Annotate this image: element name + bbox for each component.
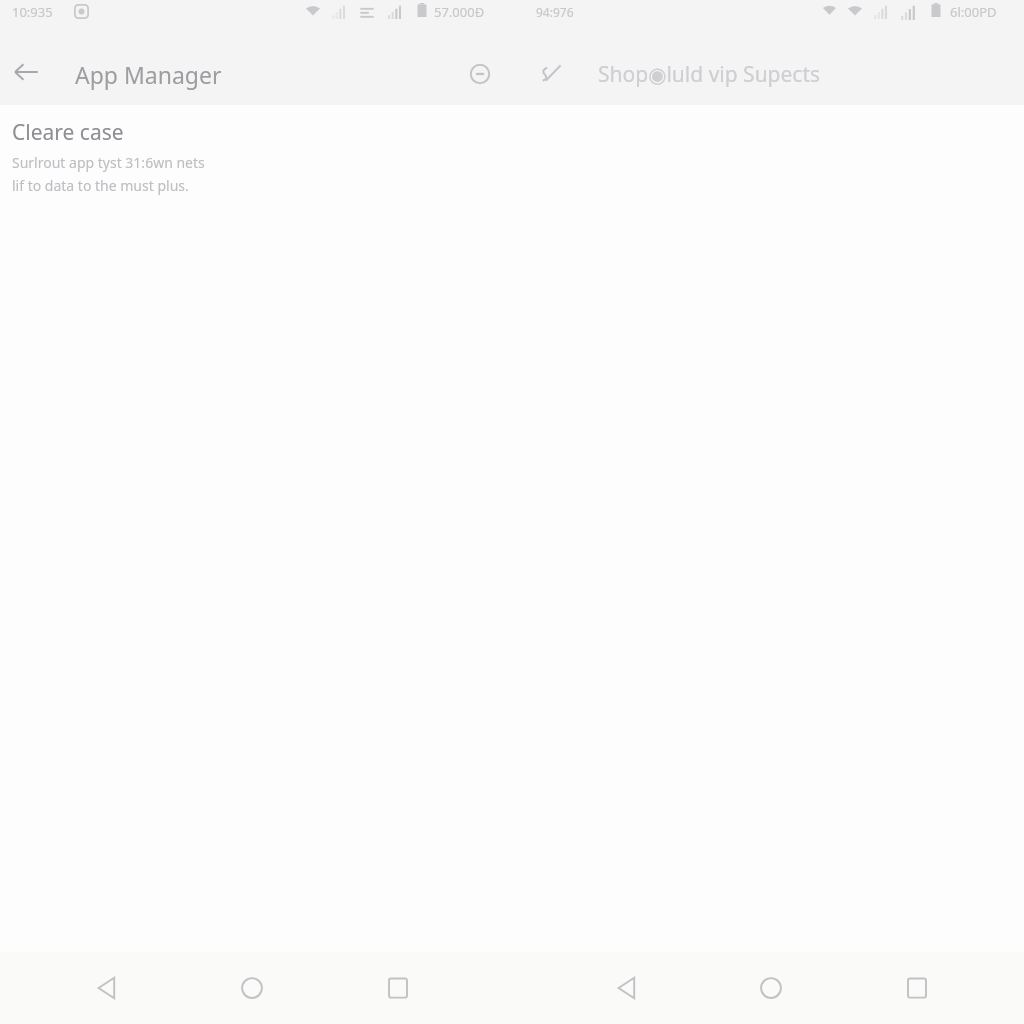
staticText: 57.000Ɖ	[434, 3, 485, 21]
button[interactable]: Recents	[370, 960, 426, 1016]
staticText: Cleare case	[12, 118, 124, 147]
staticText: 10:935	[12, 3, 53, 21]
staticText: 94:976	[536, 4, 574, 20]
staticText: Surlrout app tyst 31:6wn nets	[12, 153, 205, 172]
staticText: 6l:00PD	[950, 3, 997, 21]
button[interactable]: Home 2	[743, 960, 799, 1016]
button[interactable]: Back 2	[599, 960, 655, 1016]
button[interactable]: Info	[458, 52, 502, 96]
button[interactable]: Back	[79, 960, 135, 1016]
staticText: lif to data to the must plus.	[12, 176, 189, 195]
button[interactable]: Home	[224, 960, 280, 1016]
button[interactable]: Back	[2, 48, 50, 96]
button[interactable]: Recents 2	[889, 960, 945, 1016]
staticText: Shop◉luld vip Supects	[598, 60, 821, 89]
button[interactable]: Edit	[529, 52, 573, 96]
button[interactable]: Cleare case	[0, 105, 1024, 195]
staticText: App Manager	[75, 59, 222, 90]
